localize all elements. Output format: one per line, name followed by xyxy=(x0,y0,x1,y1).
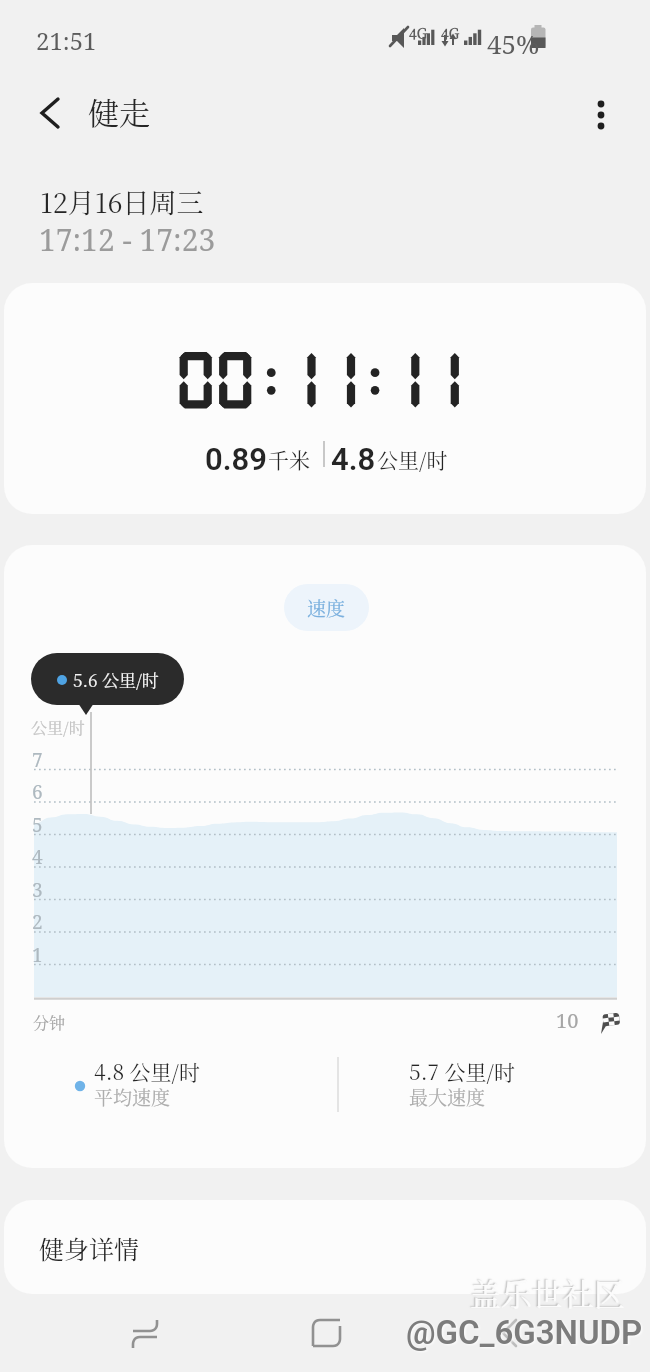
staticText: 4.8 xyxy=(331,441,376,477)
button[interactable]: More options xyxy=(578,90,624,136)
staticText: 健走 xyxy=(88,89,150,134)
staticText: @GC_6G3NUDP xyxy=(406,1313,643,1352)
staticText: 盖乐世社区 xyxy=(470,1270,625,1315)
staticText: 公里/时 xyxy=(31,716,85,739)
staticText: 5.7 公里/时 xyxy=(409,1056,515,1086)
staticText: 21:51 xyxy=(36,24,97,57)
staticText: 4 xyxy=(32,844,43,870)
button[interactable]: Home xyxy=(294,1300,358,1364)
staticText: 4G xyxy=(441,23,460,43)
button[interactable]: Back xyxy=(478,1300,542,1364)
staticText: 0.89 xyxy=(205,441,267,477)
staticText: 健身详情 xyxy=(39,1230,140,1266)
staticText: 4G xyxy=(409,23,428,43)
staticText: 最大速度 xyxy=(409,1083,486,1110)
button[interactable]: 健身详情 xyxy=(4,1200,646,1294)
staticText: 17:12 - 17:23 xyxy=(39,219,216,260)
staticText: 10 xyxy=(556,1007,579,1034)
staticText: 1 xyxy=(32,942,43,968)
staticText: 公里/时 xyxy=(377,444,448,474)
staticText: 3 xyxy=(32,877,43,903)
staticText: 45% xyxy=(487,26,540,61)
staticText: 6 xyxy=(32,779,43,805)
staticText: 5.6 公里/时 xyxy=(73,667,159,691)
staticText: 5 xyxy=(32,812,43,838)
staticText: 7 xyxy=(32,747,43,773)
staticText: 4.8 公里/时 xyxy=(94,1056,201,1086)
staticText: 2 xyxy=(32,909,43,935)
staticText: 12月16日周三 xyxy=(40,182,204,221)
button[interactable]: 速度 xyxy=(284,584,369,631)
staticText: 分钟 xyxy=(33,1011,66,1034)
button[interactable]: Recent apps xyxy=(113,1300,177,1364)
button[interactable]: Back xyxy=(26,90,72,136)
staticText: 千米 xyxy=(268,444,310,474)
staticText: 速度 xyxy=(307,594,346,621)
staticText: 平均速度 xyxy=(94,1083,171,1110)
